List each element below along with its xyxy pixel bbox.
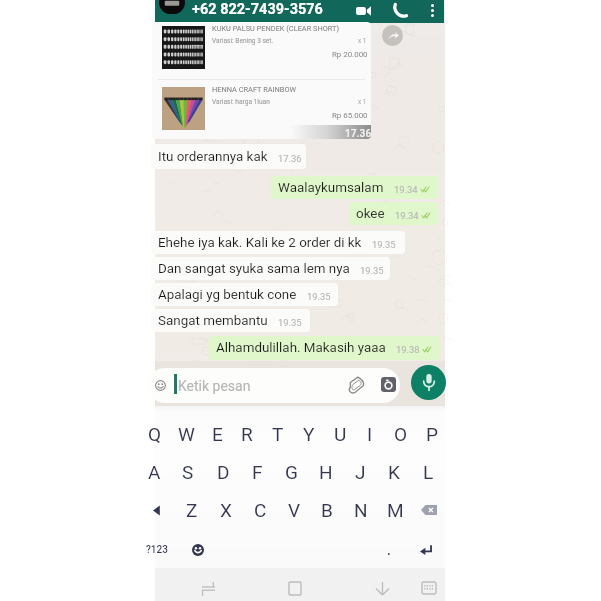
button[interactable]: G — [276, 458, 306, 486]
staticText: F — [252, 461, 263, 483]
staticText: S — [182, 461, 194, 483]
staticText: Waalaykumsalam — [278, 180, 384, 196]
button[interactable]: Voice call — [392, 2, 409, 19]
button[interactable] — [162, 87, 205, 130]
button[interactable]: Camera — [381, 377, 396, 392]
button[interactable]: B — [312, 496, 342, 524]
staticText: 19.38 — [396, 344, 420, 355]
staticText: x 1 — [358, 37, 367, 45]
button[interactable]: Q — [140, 420, 170, 448]
button[interactable]: Shift — [150, 503, 164, 517]
button[interactable]: okee — [349, 202, 438, 225]
button[interactable]: H — [311, 458, 341, 486]
button[interactable]: Y — [294, 420, 324, 448]
staticText: KUKU PALSU PENDEK (CLEAR SHORT) — [212, 24, 340, 33]
button[interactable]: D — [208, 458, 238, 486]
staticText: 19.35 — [360, 265, 384, 276]
button[interactable]: M — [380, 496, 410, 524]
staticText: Variasi: harga 1luan — [212, 98, 270, 106]
staticText: Ehehe iya kak. Kali ke 2 order di kk — [158, 235, 362, 251]
button[interactable]: Attach — [348, 377, 366, 393]
staticText: ?123 — [146, 544, 168, 556]
staticText: +62 822-7439-3576 — [192, 1, 323, 18]
button[interactable]: Dan sangat syuka sama lem nya — [151, 257, 390, 280]
button[interactable]: L — [413, 458, 443, 486]
staticText: T — [272, 423, 284, 445]
staticText: U — [334, 423, 347, 445]
button[interactable]: Sangat membantu — [151, 309, 310, 332]
button[interactable]: I — [355, 420, 385, 448]
staticText: K — [388, 461, 400, 483]
button[interactable]: Home — [284, 577, 306, 599]
button[interactable]: Hide keyboard — [418, 577, 440, 599]
button[interactable]: N — [346, 496, 376, 524]
staticText: x 1 — [358, 98, 367, 106]
staticText: Dan sangat syuka sama lem nya — [158, 261, 350, 277]
staticText: L — [423, 461, 434, 483]
button[interactable]: Ketik pesan — [148, 368, 400, 403]
button[interactable]: Recents — [197, 578, 219, 600]
staticText: I — [367, 423, 373, 445]
staticText: Q — [148, 423, 162, 445]
staticText: X — [220, 499, 232, 521]
button[interactable]: V — [279, 496, 309, 524]
staticText: 19.34 — [395, 210, 419, 221]
button[interactable]: C — [245, 496, 275, 524]
staticText: HENNA CRAFT RAINBOW — [212, 85, 297, 94]
staticText: okee — [356, 206, 385, 222]
button[interactable]: Back — [371, 577, 393, 599]
staticText: Sangat membantu — [158, 313, 268, 329]
staticText: 17.36 — [345, 127, 371, 139]
staticText: P — [426, 423, 438, 445]
button[interactable]: F — [242, 458, 272, 486]
button[interactable]: ?123 — [143, 542, 171, 558]
button[interactable]: X — [211, 496, 241, 524]
staticText: Apalagi yg bentuk cone — [158, 287, 297, 303]
staticText: E — [212, 423, 223, 445]
button[interactable]: U — [325, 420, 355, 448]
button[interactable]: R — [232, 420, 262, 448]
staticText: M — [387, 499, 404, 521]
staticText: Rp 65.000 — [332, 111, 368, 120]
staticText: B — [321, 499, 333, 521]
staticText: D — [217, 461, 230, 483]
button[interactable]: A — [139, 458, 169, 486]
button[interactable]: S — [173, 458, 203, 486]
staticText: Z — [186, 499, 198, 521]
button[interactable] — [162, 26, 205, 69]
staticText: 19.35 — [278, 317, 302, 328]
staticText: W — [178, 423, 195, 445]
button[interactable]: Waalaykumsalam — [271, 176, 438, 199]
button[interactable]: Backspace — [419, 503, 439, 517]
staticText: Y — [303, 423, 315, 445]
button[interactable]: Video call — [355, 2, 372, 19]
staticText: Itu orderannya kak — [158, 149, 268, 165]
button[interactable]: P — [417, 420, 447, 448]
button[interactable]: Emoji — [191, 543, 205, 557]
button[interactable]: Contact photo — [159, 0, 185, 14]
button[interactable]: Itu orderannya kak — [151, 144, 306, 169]
button[interactable]: K — [379, 458, 409, 486]
staticText: 19.35 — [372, 239, 396, 250]
button[interactable]: J — [345, 458, 375, 486]
button[interactable]: T — [263, 420, 293, 448]
staticText: Rp 20.000 — [332, 50, 368, 59]
button[interactable]: Apalagi yg bentuk cone — [151, 283, 338, 306]
button[interactable]: More options — [426, 2, 438, 19]
button[interactable]: E — [202, 420, 232, 448]
staticText: . — [387, 543, 391, 558]
staticText: N — [354, 499, 368, 521]
staticText: 19.34 — [394, 184, 418, 195]
button[interactable]: Forward — [382, 25, 403, 46]
button[interactable]: . — [382, 542, 396, 558]
staticText: J — [355, 461, 366, 483]
button[interactable]: Record voice message — [411, 365, 446, 400]
button[interactable]: Enter — [418, 542, 434, 558]
button[interactable]: W — [171, 420, 201, 448]
button[interactable]: O — [386, 420, 416, 448]
button[interactable]: KUKU PALSU PENDEK (CLEAR SHORT) — [152, 22, 371, 139]
button[interactable]: Alhamdulillah. Makasih yaaa — [209, 336, 440, 360]
button[interactable]: Z — [177, 496, 207, 524]
staticText: G — [285, 461, 298, 483]
button[interactable]: Ehehe iya kak. Kali ke 2 order di kk — [151, 231, 405, 254]
